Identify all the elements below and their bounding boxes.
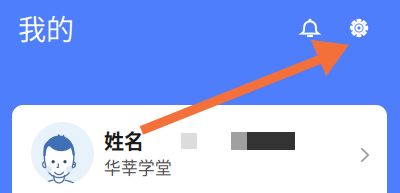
button[interactable]: Settings bbox=[337, 6, 381, 50]
button[interactable]: Notifications bbox=[288, 6, 332, 50]
staticText: 我的 bbox=[18, 8, 74, 48]
button[interactable]: 姓名 bbox=[12, 105, 387, 193]
staticText: 姓名 bbox=[104, 126, 144, 155]
staticText: 华莘学堂 bbox=[104, 155, 172, 179]
